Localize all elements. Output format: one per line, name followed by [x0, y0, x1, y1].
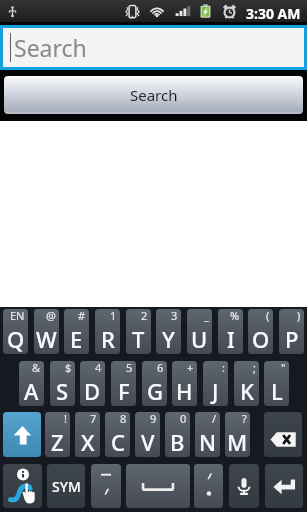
staticText: C	[111, 427, 125, 457]
staticText: 6	[157, 361, 164, 375]
staticText: V	[141, 427, 155, 457]
button[interactable]: )	[279, 309, 304, 354]
button[interactable]: 6	[142, 361, 167, 406]
staticText: A	[24, 376, 39, 406]
staticText: M	[227, 427, 248, 457]
staticText: O	[252, 324, 270, 354]
staticText: S	[56, 376, 69, 406]
button[interactable]: 5	[111, 361, 136, 406]
staticText: I	[227, 324, 235, 354]
staticText: G	[147, 376, 163, 406]
button[interactable]: Comma	[91, 464, 121, 508]
staticText: F	[118, 376, 130, 406]
button[interactable]: !	[45, 412, 70, 457]
staticText: R	[101, 324, 115, 354]
staticText: 1	[110, 309, 117, 323]
button[interactable]: Search	[4, 76, 303, 114]
staticText: P	[285, 324, 299, 354]
staticText: %	[230, 309, 240, 323]
staticText: 5	[126, 361, 133, 375]
button[interactable]: Voice input	[229, 464, 259, 508]
button[interactable]: @	[34, 309, 59, 354]
button[interactable]: "	[264, 361, 289, 406]
button[interactable]: 8	[105, 412, 130, 457]
button[interactable]: (	[248, 309, 273, 354]
staticText: )	[297, 309, 301, 323]
staticText: J	[212, 376, 219, 406]
staticText: ;	[253, 361, 256, 375]
button[interactable]: +	[172, 361, 197, 406]
staticText: B	[170, 427, 185, 457]
button[interactable]: Backspace	[264, 412, 302, 457]
staticText: :	[222, 361, 225, 375]
staticText: 8	[120, 412, 127, 426]
button[interactable]: _	[187, 309, 212, 354]
staticText: Z	[51, 427, 64, 457]
staticText: +	[187, 361, 194, 375]
button[interactable]: 2	[126, 309, 151, 354]
button[interactable]: &	[19, 361, 44, 406]
staticText: D	[84, 376, 101, 406]
staticText: &	[32, 361, 41, 375]
button[interactable]: 3	[156, 309, 181, 354]
button[interactable]: 1	[95, 309, 120, 354]
button[interactable]: Enter	[265, 464, 303, 508]
staticText: #	[78, 309, 86, 323]
button[interactable]: 4	[80, 361, 105, 406]
staticText: (	[266, 309, 270, 323]
button[interactable]: Period	[194, 464, 223, 508]
staticText: 4	[95, 361, 102, 375]
staticText: 9	[150, 412, 157, 426]
staticText: Y	[162, 324, 175, 354]
button[interactable]: Search	[3, 28, 304, 67]
button[interactable]: #	[64, 309, 89, 354]
staticText: !	[64, 412, 67, 426]
staticText: 2	[141, 309, 148, 323]
staticText: W	[36, 324, 57, 354]
button[interactable]: ;	[234, 361, 259, 406]
button[interactable]: $	[50, 361, 75, 406]
staticText: EN	[10, 309, 25, 323]
button[interactable]: Space	[126, 464, 190, 508]
staticText: H	[176, 376, 193, 406]
staticText: /	[212, 412, 217, 426]
staticText: 0	[180, 412, 187, 426]
staticText: Q	[7, 324, 25, 354]
staticText: Search	[14, 32, 87, 63]
button[interactable]: ?	[225, 412, 250, 457]
staticText: T	[132, 324, 145, 354]
button[interactable]: Shift	[3, 412, 41, 457]
staticText: E	[70, 324, 83, 354]
staticText: 7	[90, 412, 97, 426]
staticText: N	[199, 427, 217, 457]
button[interactable]: SYM	[47, 464, 85, 508]
staticText: ?	[242, 412, 247, 426]
staticText: X	[81, 427, 95, 457]
button[interactable]: 7	[75, 412, 100, 457]
button[interactable]: Swype menu	[3, 464, 42, 508]
staticText: Search	[130, 85, 178, 105]
button[interactable]: EN	[3, 309, 28, 354]
staticText: 3:30 AM	[246, 4, 301, 23]
staticText: K	[240, 376, 254, 406]
button[interactable]: 0	[165, 412, 190, 457]
staticText: L	[271, 376, 283, 406]
staticText: 3	[171, 309, 178, 323]
staticText: @	[46, 309, 56, 323]
button[interactable]: :	[203, 361, 228, 406]
staticText: $	[65, 361, 72, 375]
staticText: U	[191, 324, 208, 354]
button[interactable]: 9	[135, 412, 160, 457]
staticText: SYM	[52, 477, 81, 496]
staticText: _	[204, 309, 209, 323]
button[interactable]: %	[218, 309, 243, 354]
staticText: "	[281, 361, 286, 375]
button[interactable]: /	[195, 412, 220, 457]
